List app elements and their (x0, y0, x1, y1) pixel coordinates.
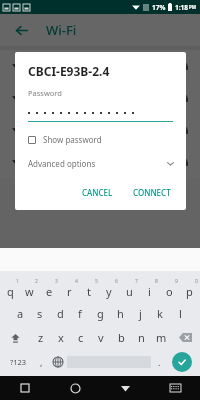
staticText: h (117, 306, 124, 321)
staticText: 0 (195, 278, 198, 285)
staticText: l (179, 306, 182, 321)
button[interactable]: 4 (59, 277, 79, 301)
staticText: 17% (152, 3, 166, 12)
button[interactable]: HOMEWIFI-5G (12, 82, 188, 114)
button[interactable]: , (33, 349, 49, 375)
button[interactable]: ARRIS-ABCD (12, 50, 188, 82)
staticText: 7 (135, 278, 138, 285)
staticText: t (87, 284, 91, 299)
staticText: d (57, 306, 64, 321)
button[interactable]: 2 (20, 277, 39, 301)
staticText: , (40, 356, 43, 368)
button[interactable]: h (110, 301, 130, 325)
staticText: a (17, 306, 24, 321)
staticText: u (126, 284, 133, 299)
button[interactable]: Switch keyboard (150, 376, 200, 400)
button[interactable]: b (111, 325, 131, 349)
staticText: 4 (75, 278, 78, 285)
staticText: p (186, 284, 193, 299)
staticText: b (118, 330, 125, 345)
staticText: CONNECT (133, 187, 171, 198)
button[interactable]: n (131, 325, 151, 349)
button[interactable]: d (50, 301, 70, 325)
button[interactable]: . (151, 349, 167, 375)
staticText: x (58, 330, 64, 345)
staticText: 5 (95, 278, 98, 285)
button[interactable]: Advanced options (28, 158, 175, 169)
staticText: Password (28, 88, 62, 98)
button[interactable]: Recents (0, 376, 50, 400)
staticText: Show password (43, 134, 102, 145)
button[interactable]: 5 (79, 277, 99, 301)
other: Expand (166, 159, 175, 168)
button[interactable]: m (151, 325, 171, 349)
button[interactable]: Shift (1, 325, 30, 349)
staticText: 3 (55, 278, 58, 285)
button[interactable]: 3 (39, 277, 59, 301)
staticText: DSITESTENV (39, 156, 91, 168)
staticText: Wi-Fi (46, 21, 77, 39)
staticText: w (25, 284, 34, 299)
button[interactable]: Hide keyboard (100, 376, 150, 400)
button[interactable]: c (71, 325, 91, 349)
staticText: g (97, 306, 104, 321)
staticText: ?123 (10, 357, 27, 367)
button[interactable]: 7 (119, 277, 139, 301)
button[interactable]: CANCEL (76, 183, 119, 202)
button[interactable]: Backspace (171, 325, 199, 349)
button[interactable]: j (130, 301, 150, 325)
staticText: CBCI-E93B-2.4 (28, 63, 110, 79)
button[interactable]: Change language (49, 349, 67, 375)
button[interactable]: 9 (159, 277, 179, 301)
button[interactable]: f (70, 301, 90, 325)
button[interactable]: DSIGUEST (12, 114, 188, 146)
button[interactable]: Home (50, 376, 100, 400)
button[interactable]: l (170, 301, 190, 325)
button[interactable] (28, 107, 173, 122)
staticText: Advanced options (28, 158, 96, 169)
staticText: e (46, 284, 53, 299)
staticText: r (67, 284, 72, 299)
staticText: HOMEWIFI-5G (39, 92, 100, 104)
button[interactable]: a (10, 301, 30, 325)
staticText: z (38, 330, 44, 345)
button[interactable]: v (91, 325, 111, 349)
button[interactable]: 1 (1, 277, 20, 301)
staticText: f (78, 306, 82, 321)
button[interactable]: g (90, 301, 110, 325)
staticText: CANCEL (82, 187, 113, 198)
staticText: v (98, 330, 104, 345)
button[interactable]: Enter (167, 349, 197, 375)
button[interactable]: 0 (179, 277, 199, 301)
button[interactable]: ?123 (3, 349, 33, 375)
button[interactable]: Back (10, 19, 32, 41)
button[interactable]: Show password (28, 134, 186, 145)
button[interactable]: s (30, 301, 50, 325)
button[interactable]: x (51, 325, 71, 349)
staticText: ARRIS-ABCD (39, 60, 91, 72)
button[interactable]: CONNECT (127, 183, 177, 202)
button[interactable]: 8 (139, 277, 159, 301)
staticText: k (157, 306, 163, 321)
staticText: . (158, 356, 161, 368)
staticText: 2 (35, 278, 38, 285)
staticText: 1:18 (175, 3, 188, 12)
staticText: 8 (155, 278, 158, 285)
staticText: 9 (175, 278, 178, 285)
staticText: s (37, 306, 43, 321)
staticText: i (148, 284, 151, 299)
staticText: m (156, 330, 167, 345)
staticText: o (166, 284, 173, 299)
button[interactable]: 6 (99, 277, 119, 301)
button[interactable]: z (30, 325, 51, 349)
button[interactable]: k (150, 301, 170, 325)
staticText: y (106, 284, 112, 299)
staticText: 1 (16, 278, 19, 285)
staticText: n (138, 330, 145, 345)
staticText: q (7, 284, 14, 299)
button[interactable]: DSITESTENV (12, 146, 188, 178)
staticText: j (139, 306, 142, 321)
staticText: c (78, 330, 84, 345)
